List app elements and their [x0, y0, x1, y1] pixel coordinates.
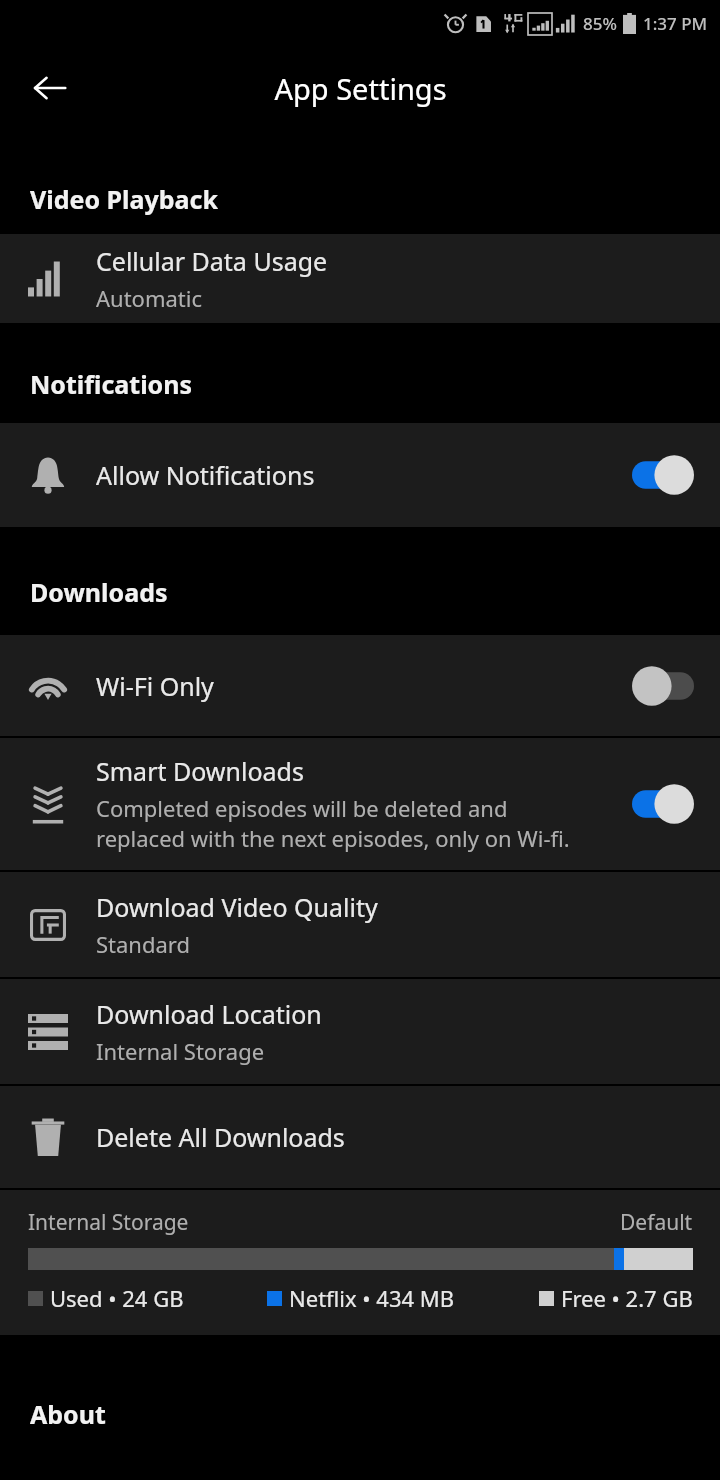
- button[interactable]: Allow Notifications: [0, 423, 720, 527]
- button[interactable]: Toggle on: [632, 782, 694, 826]
- staticText: 1:37 PM: [643, 12, 708, 35]
- staticText: Downloads: [30, 575, 168, 609]
- staticText: Internal Storage: [96, 1036, 265, 1066]
- staticText: Default: [620, 1208, 693, 1237]
- staticText: App Settings: [274, 69, 447, 108]
- staticText: Video Playback: [30, 182, 218, 216]
- button[interactable]: Download Location: [0, 979, 720, 1084]
- staticText: Wi-Fi Only: [96, 669, 214, 703]
- staticText: Cellular Data Usage: [96, 244, 328, 278]
- staticText: Notifications: [30, 367, 193, 401]
- button[interactable]: Toggle on: [632, 453, 694, 497]
- staticText: Automatic: [96, 283, 202, 313]
- staticText: Smart Downloads: [96, 754, 304, 788]
- staticText: Netflix • 434 MB: [289, 1283, 455, 1313]
- button[interactable]: Toggle off: [632, 664, 694, 708]
- staticText: Standard: [96, 929, 191, 959]
- staticText: Allow Notifications: [96, 458, 315, 492]
- staticText: Download Location: [96, 997, 322, 1031]
- staticText: Internal Storage: [28, 1208, 189, 1237]
- button[interactable]: Back: [18, 56, 82, 120]
- staticText: Free • 2.7 GB: [561, 1283, 693, 1313]
- button[interactable]: Delete All Downloads: [0, 1086, 720, 1188]
- staticText: 85%: [583, 12, 617, 35]
- staticText: Download Video Quality: [96, 890, 378, 924]
- button[interactable]: Download Video Quality: [0, 872, 720, 977]
- staticText: About: [30, 1397, 106, 1431]
- staticText: Delete All Downloads: [96, 1120, 345, 1154]
- button[interactable]: Wi-Fi Only: [0, 635, 720, 736]
- staticText: Completed episodes will be deleted and r…: [96, 793, 570, 854]
- staticText: Used • 24 GB: [50, 1283, 184, 1313]
- button[interactable]: Cellular Data Usage: [0, 234, 720, 323]
- button[interactable]: Smart Downloads: [0, 738, 720, 870]
